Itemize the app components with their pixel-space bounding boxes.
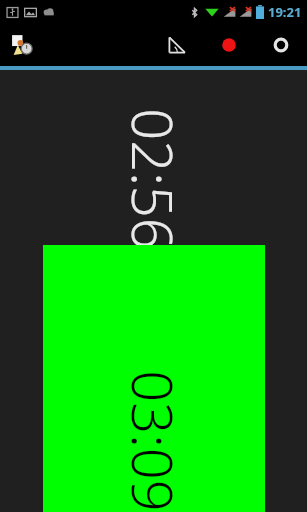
button[interactable]: Measure angle xyxy=(151,24,203,66)
staticText: 19:21 xyxy=(268,3,302,21)
button[interactable]: Record xyxy=(203,24,255,66)
button[interactable]: 03:09 xyxy=(43,245,265,512)
button[interactable]: 02:56 xyxy=(114,113,194,245)
staticText: 03:09 xyxy=(116,370,192,512)
button[interactable]: Stop xyxy=(255,24,307,66)
button[interactable]: App icon xyxy=(6,28,40,62)
staticText: 02:56 xyxy=(116,108,192,250)
